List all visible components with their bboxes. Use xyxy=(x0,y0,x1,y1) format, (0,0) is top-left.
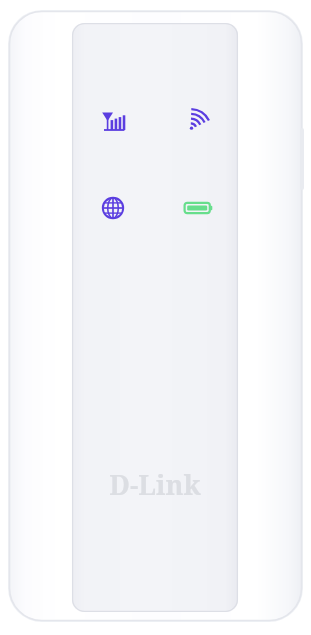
staticText: D-Link xyxy=(109,466,201,498)
button[interactable]: Internet xyxy=(98,193,128,223)
button[interactable]: Cellular signal xyxy=(98,106,128,136)
button[interactable]: Battery xyxy=(181,195,217,221)
button[interactable]: Wi-Fi xyxy=(184,106,214,136)
